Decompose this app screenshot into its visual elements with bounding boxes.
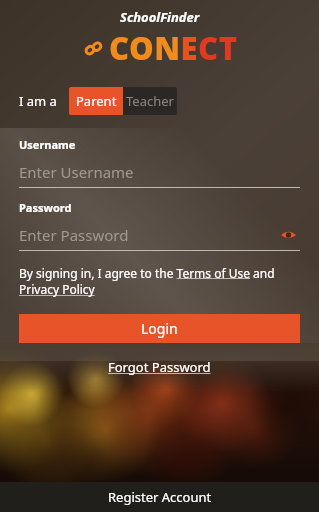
staticText: Password	[19, 200, 72, 215]
staticText: I am a	[19, 92, 57, 110]
staticText: CONECT	[109, 27, 238, 69]
button[interactable]: Enter Password	[19, 222, 300, 248]
staticText: By signing in, I agree to the Terms of U…	[19, 265, 300, 298]
staticText: Teacher	[126, 92, 174, 110]
button[interactable]: Forgot Password	[100, 355, 219, 379]
staticText: Parent	[76, 92, 117, 110]
button[interactable]: Login	[19, 314, 300, 343]
button[interactable]: Show password	[276, 223, 300, 247]
button[interactable]: Register Account	[0, 482, 319, 512]
staticText: SchoolFinder	[120, 8, 200, 26]
staticText: Enter Username	[19, 162, 134, 182]
staticText: Username	[19, 137, 76, 152]
staticText: Enter Password	[19, 225, 129, 245]
staticText: Forgot Password	[108, 358, 211, 376]
button[interactable]: Teacher	[123, 87, 177, 115]
button[interactable]: Parent	[69, 87, 123, 115]
staticText: Login	[141, 319, 178, 338]
button[interactable]: Enter Username	[19, 159, 300, 185]
staticText: Register Account	[108, 488, 212, 506]
